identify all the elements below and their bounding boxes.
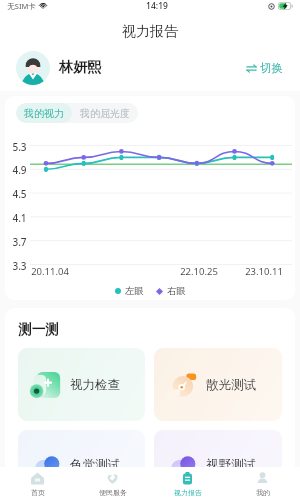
staticText: 林妍熙 xyxy=(59,59,101,77)
staticText: 视力报告 xyxy=(174,488,202,497)
button[interactable]: 我的屈光度 xyxy=(72,103,138,123)
button[interactable]: 视野测试 xyxy=(154,430,282,500)
button[interactable]: 我的 xyxy=(225,467,300,500)
staticText: 我的屈光度 xyxy=(80,107,130,120)
button[interactable]: 散光测试 xyxy=(154,348,282,421)
button[interactable]: 切换 xyxy=(243,56,286,80)
staticText: 色觉测试 xyxy=(70,457,120,473)
staticText: 我的视力 xyxy=(24,107,64,120)
staticText: 4.9 xyxy=(12,163,27,175)
staticText: 4.1 xyxy=(12,211,27,223)
button[interactable]: 便民服务 xyxy=(75,467,150,500)
staticText: 视野测试 xyxy=(206,457,256,473)
staticText: 测一测 xyxy=(18,321,59,338)
staticText: 14:19 xyxy=(146,0,168,12)
staticText: 4.5 xyxy=(12,187,27,199)
staticText: 散光测试 xyxy=(206,377,256,393)
staticText: 22.10.25 xyxy=(180,265,218,277)
staticText: 无SIM卡 xyxy=(7,1,36,11)
button[interactable]: 我的视力 xyxy=(16,103,72,123)
staticText: 右眼 xyxy=(167,285,186,297)
staticText: 左眼 xyxy=(125,285,144,297)
staticText: 3.3 xyxy=(12,259,27,271)
button[interactable]: 视力检查 xyxy=(18,348,145,421)
staticText: 3.7 xyxy=(12,235,27,247)
staticText: 我的 xyxy=(256,488,270,497)
staticText: 23.10.11 xyxy=(245,265,283,277)
staticText: 便民服务 xyxy=(99,488,127,497)
staticText: 视力检查 xyxy=(70,377,120,393)
button[interactable]: 色觉测试 xyxy=(18,430,145,500)
staticText: 20.11.04 xyxy=(31,265,69,277)
staticText: 5.3 xyxy=(12,140,27,152)
button[interactable]: 视力报告 xyxy=(150,467,225,500)
staticText: 切换 xyxy=(260,61,283,75)
staticText: 首页 xyxy=(31,488,45,497)
staticText: 视力报告 xyxy=(122,23,178,41)
button[interactable]: 首页 xyxy=(0,467,75,500)
